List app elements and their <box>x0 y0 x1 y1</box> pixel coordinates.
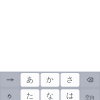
staticText: か <box>46 75 54 84</box>
staticText: は <box>66 91 74 100</box>
button[interactable]: は <box>60 87 80 100</box>
staticText: な <box>46 91 54 100</box>
staticText: た <box>26 91 34 100</box>
staticText: 空白 <box>85 94 95 100</box>
button[interactable]: さ <box>60 71 80 87</box>
button[interactable]: Backspace <box>80 71 100 87</box>
staticText: あ <box>26 75 34 84</box>
button[interactable]: な <box>40 87 60 100</box>
button[interactable]: Move cursor right <box>0 71 20 87</box>
staticText: さ <box>66 75 74 84</box>
button[interactable]: あ <box>20 71 40 87</box>
button[interactable]: 空白 <box>80 89 100 100</box>
button[interactable]: か <box>40 71 60 87</box>
button[interactable]: た <box>20 87 40 100</box>
button[interactable]: Undo <box>0 87 20 100</box>
